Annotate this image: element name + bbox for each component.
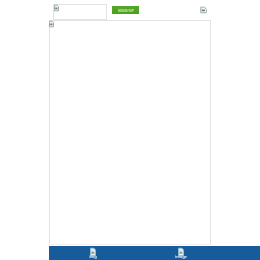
button[interactable]: Tab one bbox=[60, 246, 130, 260]
staticText: SIGN UP bbox=[118, 8, 134, 13]
button[interactable]: Header logo bbox=[200, 7, 207, 13]
button[interactable]: Search field bbox=[53, 4, 107, 20]
staticText: img bbox=[87, 254, 99, 259]
button[interactable]: Tab two bbox=[140, 246, 210, 260]
staticText: image nav bbox=[175, 254, 187, 260]
button[interactable]: SIGN UP bbox=[112, 6, 139, 14]
